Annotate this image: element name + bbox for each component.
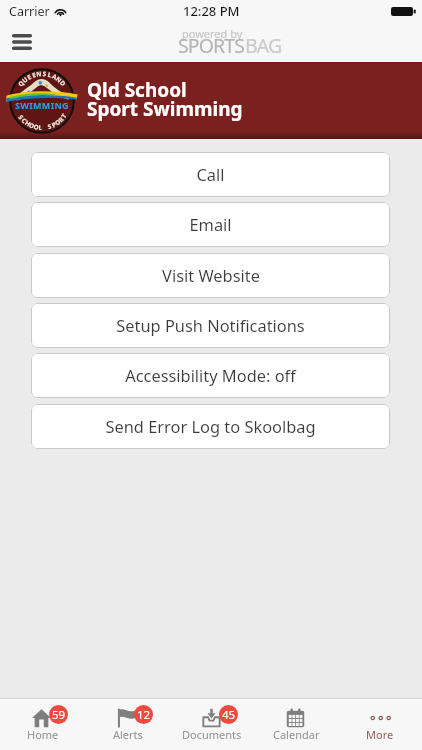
staticText: Qld School Sport Swimming [87, 77, 243, 121]
staticText: Accessibility Mode: off [125, 364, 296, 386]
button[interactable]: 59 [0, 699, 85, 744]
button[interactable]: Calendar [254, 699, 338, 744]
staticText: SPORTS [178, 32, 245, 59]
button[interactable]: Setup Push Notifications [31, 303, 390, 348]
staticText: Email [189, 213, 232, 235]
button[interactable]: Accessibility Mode: off [31, 353, 390, 398]
staticText: Send Error Log to Skoolbag [105, 415, 316, 437]
staticText: Setup Push Notifications [116, 314, 305, 336]
button[interactable]: 45 [170, 699, 254, 744]
staticText: powered by [182, 26, 243, 41]
staticText: Call [196, 163, 225, 185]
staticText: More [366, 727, 394, 742]
staticText: Calendar [273, 727, 320, 742]
button[interactable]: 12 [85, 699, 170, 744]
button[interactable]: More [338, 699, 422, 744]
staticText: 45 [222, 707, 236, 723]
staticText: Documents [182, 727, 242, 742]
button[interactable]: Visit Website [31, 253, 390, 298]
staticText: Visit Website [162, 264, 260, 286]
button[interactable]: Call [31, 152, 390, 197]
staticText: 12:28 PM [183, 2, 240, 20]
staticText: 12 [137, 707, 151, 723]
staticText: Home [27, 727, 59, 742]
staticText: Alerts [113, 727, 143, 742]
button[interactable]: Email [31, 202, 390, 247]
staticText: BAG [245, 32, 282, 59]
staticText: Carrier [9, 3, 50, 20]
staticText: 59 [52, 707, 66, 723]
button[interactable]: Menu [4, 24, 40, 60]
button[interactable]: Send Error Log to Skoolbag [31, 404, 390, 449]
